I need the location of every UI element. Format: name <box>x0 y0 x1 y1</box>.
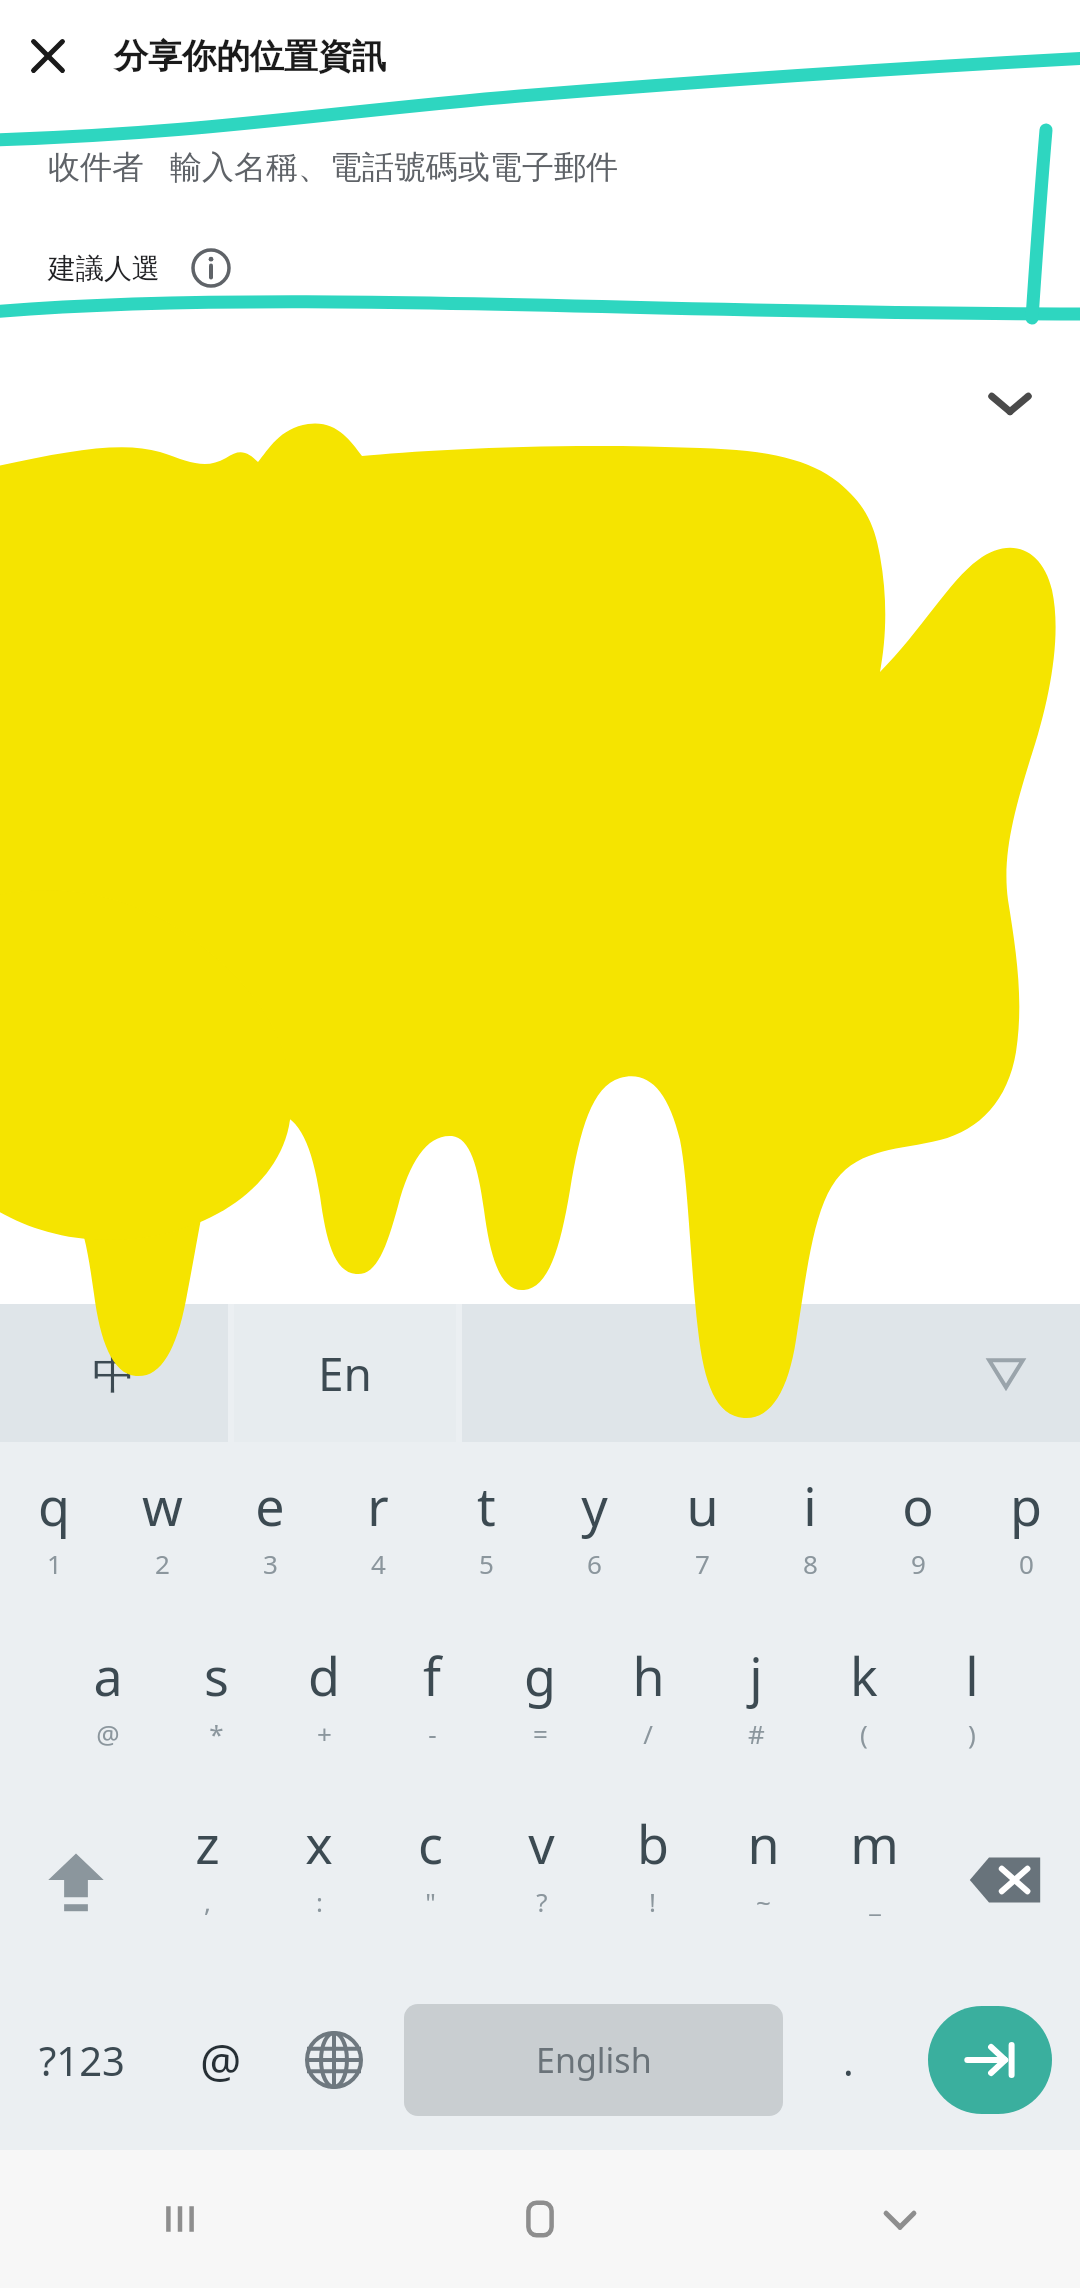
button[interactable]: Backspace <box>930 1790 1080 1970</box>
button[interactable]: Back <box>720 2150 1080 2288</box>
button[interactable]: s <box>162 1620 270 1790</box>
staticText: / <box>643 1716 653 1751</box>
staticText: i <box>803 1470 817 1541</box>
staticText: j <box>749 1640 763 1711</box>
staticText: * <box>209 1716 224 1751</box>
staticText: 收件者 <box>48 147 144 187</box>
staticText: f <box>423 1640 441 1711</box>
button[interactable]: Expand <box>940 670 1080 848</box>
staticText: x <box>305 1808 333 1879</box>
button[interactable]: c <box>375 1790 486 1970</box>
button[interactable]: @ <box>164 1970 277 2150</box>
button[interactable]: Expand <box>0 670 1080 848</box>
button[interactable]: v <box>486 1790 597 1970</box>
staticText: e <box>255 1470 285 1541</box>
staticText: + <box>317 1716 332 1751</box>
button[interactable]: Expand <box>0 492 1080 670</box>
staticText: # <box>748 1716 765 1751</box>
staticText: English <box>536 2037 652 2083</box>
staticText: s <box>204 1640 229 1711</box>
button[interactable]: o <box>864 1450 972 1620</box>
staticText: 4 <box>371 1546 386 1581</box>
button[interactable]: t <box>432 1450 540 1620</box>
button[interactable]: q <box>0 1450 108 1620</box>
button[interactable]: b <box>597 1790 708 1970</box>
button[interactable]: n <box>708 1790 819 1970</box>
button[interactable]: En <box>234 1304 456 1442</box>
staticText: ~ <box>756 1884 771 1919</box>
staticText: 0 <box>1019 1546 1034 1581</box>
button[interactable]: h <box>594 1620 702 1790</box>
staticText: _ <box>869 1884 881 1919</box>
button[interactable]: d <box>270 1620 378 1790</box>
button[interactable]: Collapse <box>978 1345 1034 1401</box>
staticText: 建議人選 <box>48 251 160 286</box>
button[interactable]: Collapse <box>462 1304 1080 1442</box>
staticText: o <box>902 1470 934 1541</box>
button[interactable]: ?123 <box>0 1970 164 2150</box>
staticText: 3 <box>263 1546 278 1581</box>
button[interactable]: English <box>404 2004 783 2116</box>
staticText: ? <box>536 1884 548 1919</box>
staticText: b <box>637 1808 669 1879</box>
button[interactable]: y <box>540 1450 648 1620</box>
button[interactable]: g <box>486 1620 594 1790</box>
button[interactable]: Info <box>186 243 236 293</box>
staticText: 2 <box>155 1546 170 1581</box>
button[interactable]: l <box>918 1620 1026 1790</box>
staticText: m <box>850 1808 899 1879</box>
staticText: - <box>428 1716 437 1751</box>
staticText: : <box>316 1884 323 1919</box>
staticText: h <box>632 1640 665 1711</box>
staticText: g <box>524 1640 556 1711</box>
button[interactable]: . <box>797 1970 899 2150</box>
staticText: v <box>528 1808 555 1879</box>
staticText: n <box>747 1808 780 1879</box>
staticText: = <box>533 1716 548 1751</box>
staticText: 9 <box>911 1546 926 1581</box>
button[interactable]: Enter <box>928 2006 1052 2114</box>
staticText: En <box>318 1342 373 1405</box>
button[interactable]: w <box>108 1450 216 1620</box>
button[interactable]: Expand <box>940 492 1080 670</box>
button[interactable]: x <box>263 1790 375 1970</box>
staticText: p <box>1010 1470 1042 1541</box>
staticText: 1 <box>47 1546 62 1581</box>
staticText: c <box>418 1808 443 1879</box>
button[interactable]: k <box>810 1620 918 1790</box>
staticText: t <box>477 1470 496 1541</box>
staticText: ) <box>968 1716 976 1751</box>
staticText: w <box>142 1470 183 1541</box>
button[interactable]: Close <box>0 8 96 104</box>
staticText: @ <box>96 1716 120 1751</box>
staticText: 分享你的位置資訊 <box>114 35 386 78</box>
button[interactable]: m <box>819 1790 930 1970</box>
staticText: q <box>38 1470 70 1541</box>
button[interactable]: Expand <box>0 314 1080 492</box>
staticText: y <box>581 1470 608 1541</box>
button[interactable]: 中 <box>0 1304 228 1442</box>
staticText: " <box>425 1884 436 1919</box>
button[interactable]: z <box>151 1790 263 1970</box>
button[interactable]: i <box>756 1450 864 1620</box>
button[interactable]: j <box>702 1620 810 1790</box>
button[interactable]: Shift <box>0 1790 151 1970</box>
staticText: u <box>686 1470 719 1541</box>
button[interactable]: a <box>54 1620 162 1790</box>
button[interactable]: Expand <box>940 314 1080 492</box>
staticText: z <box>195 1808 220 1879</box>
button[interactable]: Recents <box>0 2150 360 2288</box>
button[interactable]: f <box>378 1620 486 1790</box>
staticText: @ <box>200 2029 242 2092</box>
button[interactable]: r <box>324 1450 432 1620</box>
button[interactable]: Home <box>360 2150 720 2288</box>
button[interactable]: u <box>648 1450 756 1620</box>
staticText: l <box>965 1640 979 1711</box>
button[interactable]: p <box>972 1450 1080 1620</box>
button[interactable]: Change language <box>277 1970 390 2150</box>
staticText: a <box>93 1640 123 1711</box>
staticText: ( <box>860 1716 868 1751</box>
staticText: 中 <box>92 1346 136 1401</box>
button[interactable]: e <box>216 1450 324 1620</box>
staticText: 8 <box>803 1546 818 1581</box>
